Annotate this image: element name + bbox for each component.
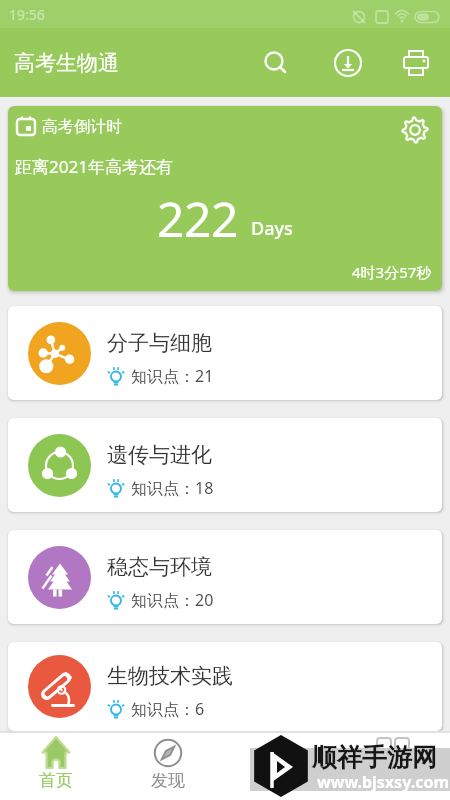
button[interactable]: [224, 731, 337, 800]
button[interactable]: [396, 112, 434, 150]
staticText: 高考倒计时: [42, 117, 122, 137]
staticText: 4时3分57秒: [352, 262, 432, 282]
staticText: 222: [157, 186, 238, 251]
button[interactable]: 高考倒计时: [8, 106, 442, 291]
button[interactable]: [394, 41, 438, 85]
button[interactable]: 遗传与进化: [8, 418, 442, 512]
staticText: 知识点：21: [131, 365, 214, 387]
staticText: 生物技术实践: [107, 663, 233, 689]
staticText: 稳态与环境: [107, 554, 212, 580]
button[interactable]: 发现: [112, 731, 224, 800]
staticText: Days: [251, 216, 293, 241]
staticText: 距离2021年高考还有: [15, 155, 173, 178]
staticText: www.bjsxsy.com: [317, 771, 449, 793]
staticText: 顺祥手游网: [312, 742, 437, 773]
staticText: 分子与细胞: [107, 330, 212, 356]
staticText: 遗传与进化: [107, 442, 212, 468]
staticText: 高考生物通: [14, 50, 119, 76]
button[interactable]: 首页: [0, 731, 112, 800]
staticText: 发现: [151, 770, 185, 791]
button[interactable]: [252, 41, 296, 85]
button[interactable]: 生物技术实践: [8, 642, 442, 731]
staticText: 知识点：18: [131, 477, 214, 499]
button[interactable]: [337, 731, 450, 800]
button[interactable]: [326, 41, 370, 85]
staticText: 首页: [39, 770, 73, 791]
staticText: 知识点：20: [131, 589, 214, 611]
button[interactable]: 稳态与环境: [8, 530, 442, 624]
staticText: 知识点：6: [131, 698, 205, 720]
staticText: 19:56: [9, 5, 45, 24]
button[interactable]: 分子与细胞: [8, 306, 442, 400]
